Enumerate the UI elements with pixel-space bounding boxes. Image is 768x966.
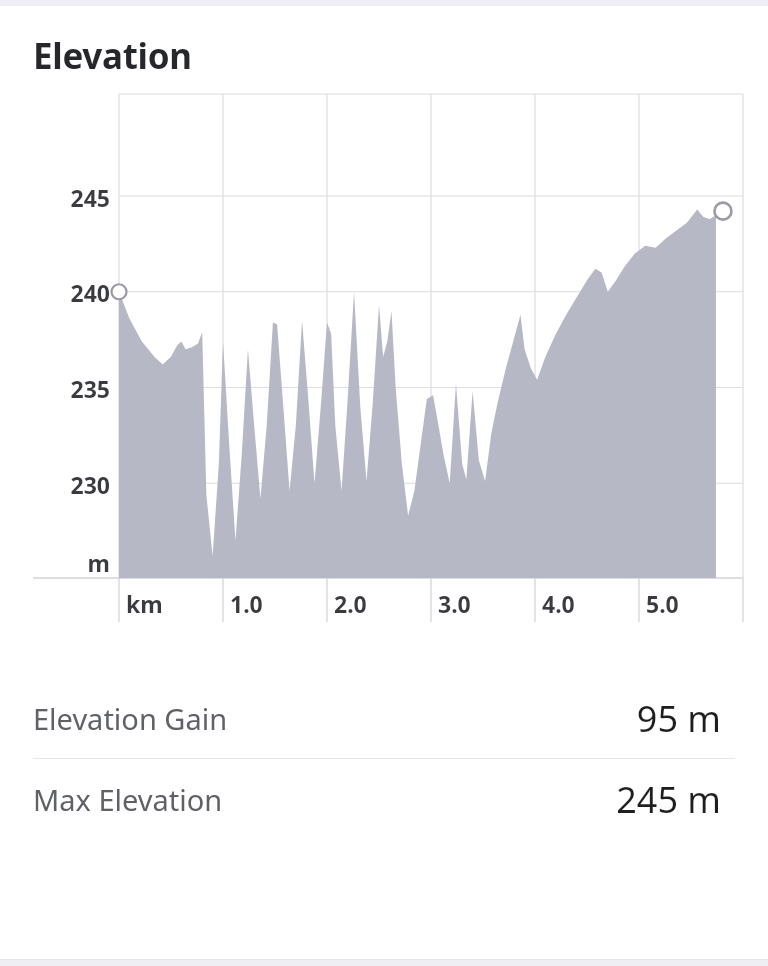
staticText: m	[0, 547, 110, 578]
staticText: km	[126, 588, 163, 619]
staticText: 245 m	[616, 775, 721, 824]
staticText: Max Elevation	[33, 780, 223, 819]
staticText: 3.0	[438, 588, 471, 619]
staticText: 2.0	[334, 588, 367, 619]
staticText: 1.0	[230, 588, 263, 619]
staticText: 235	[0, 373, 110, 404]
staticText: 230	[0, 469, 110, 500]
staticText: 95 m	[636, 694, 721, 743]
staticText: 240	[0, 277, 110, 308]
staticText: 5.0	[646, 588, 679, 619]
staticText: 245	[0, 182, 110, 213]
button[interactable]: Max Elevation	[0, 759, 768, 839]
button[interactable]: Elevation Gain	[0, 678, 768, 758]
staticText: Elevation	[33, 32, 192, 80]
staticText: 4.0	[542, 588, 575, 619]
staticText: Elevation Gain	[33, 699, 228, 738]
